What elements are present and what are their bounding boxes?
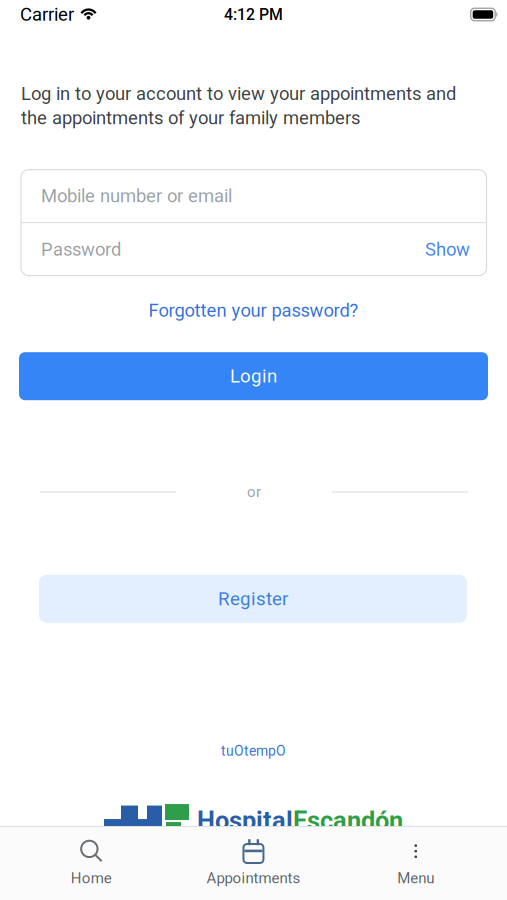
staticText: Password bbox=[41, 239, 121, 260]
button[interactable]: Home bbox=[10, 838, 172, 888]
staticText: Login bbox=[230, 365, 277, 387]
staticText: Hospital bbox=[197, 806, 293, 836]
button[interactable]: Password bbox=[21, 223, 486, 276]
staticText: tuOtempO bbox=[221, 743, 286, 759]
staticText: the appointments of your family members bbox=[21, 107, 360, 129]
button[interactable]: Login bbox=[19, 352, 488, 400]
staticText: 4:12 PM bbox=[224, 5, 283, 24]
staticText: Escandón bbox=[293, 806, 403, 836]
staticText: Log in to your account to view your appo… bbox=[21, 83, 456, 105]
button[interactable]: Mobile number or email bbox=[21, 170, 486, 222]
staticText: Mobile number or email bbox=[41, 185, 232, 207]
button[interactable]: Register bbox=[39, 575, 467, 623]
staticText: Home bbox=[71, 869, 112, 887]
staticText: Register bbox=[218, 588, 288, 610]
staticText: Appointments bbox=[206, 869, 300, 887]
button[interactable]: Forgotten your password? bbox=[148, 300, 358, 321]
button[interactable]: Show bbox=[425, 239, 470, 260]
button[interactable]: Menu bbox=[335, 838, 497, 888]
staticText: Forgotten your password? bbox=[148, 300, 358, 321]
button[interactable]: Appointments bbox=[172, 838, 335, 888]
staticText: or bbox=[247, 483, 261, 501]
staticText: Carrier bbox=[20, 4, 74, 25]
staticText: Show bbox=[425, 239, 470, 260]
staticText: Menu bbox=[397, 869, 434, 887]
